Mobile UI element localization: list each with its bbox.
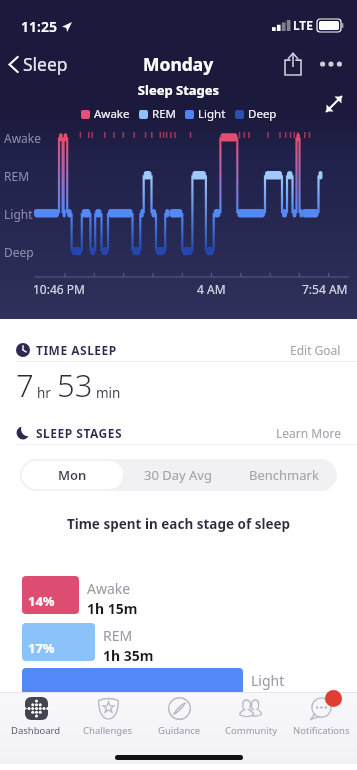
button[interactable]: Mon	[22, 461, 123, 489]
button[interactable]: Benchmark	[231, 459, 337, 491]
staticText: 30 Day Avg	[144, 466, 212, 484]
staticText: Deep	[248, 106, 277, 122]
button[interactable]: Guidance	[144, 692, 215, 742]
staticText: Deep	[4, 244, 34, 260]
staticText: 4 AM	[197, 281, 226, 297]
button[interactable]: Expand chart	[323, 93, 345, 115]
staticText: LTE	[293, 17, 313, 33]
button[interactable]: Notifications	[286, 692, 357, 742]
button[interactable]: TIME ASLEEP	[0, 330, 357, 370]
button[interactable]: Community	[215, 692, 286, 742]
button[interactable]: More options	[313, 46, 349, 82]
staticText: Edit Goal	[290, 342, 341, 358]
staticText: Awake	[4, 130, 42, 146]
staticText: Awake	[94, 106, 130, 122]
staticText: REM	[152, 106, 176, 122]
staticText: REM	[103, 626, 133, 645]
staticText: 7	[16, 364, 34, 406]
staticText: Learn More	[276, 425, 341, 441]
staticText: Mon	[58, 466, 87, 484]
staticText: Sleep Stages	[0, 81, 357, 99]
staticText: 1h 15m	[87, 599, 138, 617]
staticText: Challenges	[83, 724, 133, 737]
staticText: Light	[4, 206, 33, 222]
staticText: 1h 35m	[103, 646, 154, 664]
staticText: min	[96, 384, 121, 402]
staticText: 17%	[28, 639, 55, 657]
button[interactable]: 30 Day Avg	[125, 459, 231, 491]
staticText: Sleep	[23, 52, 68, 76]
staticText: hr	[37, 384, 51, 402]
button[interactable]: Dashboard	[0, 692, 72, 742]
staticText: 11:25	[21, 17, 57, 36]
staticText: Notifications	[293, 724, 350, 737]
staticText: Guidance	[158, 724, 201, 737]
button[interactable]: Share	[275, 46, 311, 82]
staticText: Dashboard	[11, 724, 61, 737]
staticText: 53	[57, 364, 93, 406]
staticText: 10:46 PM	[33, 281, 85, 297]
staticText: REM	[4, 168, 30, 184]
button[interactable]: Sleep	[0, 46, 74, 82]
staticText: Awake	[87, 579, 131, 598]
staticText: Benchmark	[249, 466, 319, 484]
staticText: SLEEP STAGES	[36, 425, 123, 441]
staticText: Monday	[143, 52, 214, 76]
button[interactable]: Challenges	[72, 692, 144, 742]
staticText: 14%	[28, 592, 55, 610]
button[interactable]: SLEEP STAGES	[0, 413, 357, 453]
staticText: TIME ASLEEP	[36, 342, 117, 358]
staticText: Community	[225, 724, 277, 737]
staticText: 7:54 AM	[302, 281, 348, 297]
staticText: Light	[251, 671, 285, 690]
staticText: Light	[198, 106, 226, 122]
staticText: Time spent in each stage of sleep	[0, 515, 357, 533]
